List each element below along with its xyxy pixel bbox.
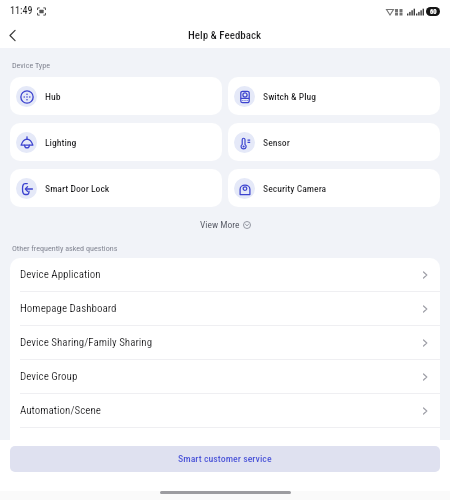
button[interactable]: View More <box>194 216 257 233</box>
button[interactable]: Smart customer service <box>10 446 440 472</box>
button[interactable]: Device Sharing/Family Sharing <box>10 326 440 359</box>
staticText: Help & Feedback <box>188 29 262 42</box>
button[interactable]: Device Group <box>10 360 440 393</box>
staticText: 11:49 <box>10 5 33 17</box>
button[interactable]: Device Application <box>10 258 440 291</box>
staticText: Smart Door Lock <box>45 183 110 194</box>
staticText: Sensor <box>263 137 290 148</box>
staticText: Device Type <box>12 60 50 69</box>
staticText: Lighting <box>45 137 77 148</box>
button[interactable]: Sensor <box>228 123 440 161</box>
button[interactable]: Switch & Plug <box>228 77 440 115</box>
button[interactable]: Homepage Dashboard <box>10 292 440 325</box>
staticText: Device Group <box>20 370 420 383</box>
staticText: View More <box>200 219 240 230</box>
staticText: Smart customer service <box>178 453 272 465</box>
button[interactable]: Hub <box>10 77 222 115</box>
staticText: 60 <box>430 8 437 16</box>
button[interactable]: Lighting <box>10 123 222 161</box>
button[interactable]: Smart Door Lock <box>10 169 222 207</box>
staticText: Automation/Scene <box>20 404 420 417</box>
staticText: Device Application <box>20 268 420 281</box>
staticText: Homepage Dashboard <box>20 302 420 315</box>
button[interactable]: Security Camera <box>228 169 440 207</box>
staticText: Switch & Plug <box>263 91 317 102</box>
staticText: Device Sharing/Family Sharing <box>20 336 420 349</box>
staticText: Security Camera <box>263 183 327 194</box>
button[interactable]: Automation/Scene <box>10 394 440 427</box>
staticText: Other frequently asked questions <box>12 243 118 252</box>
staticText: Hub <box>45 91 61 102</box>
button[interactable]: Back <box>0 22 26 48</box>
